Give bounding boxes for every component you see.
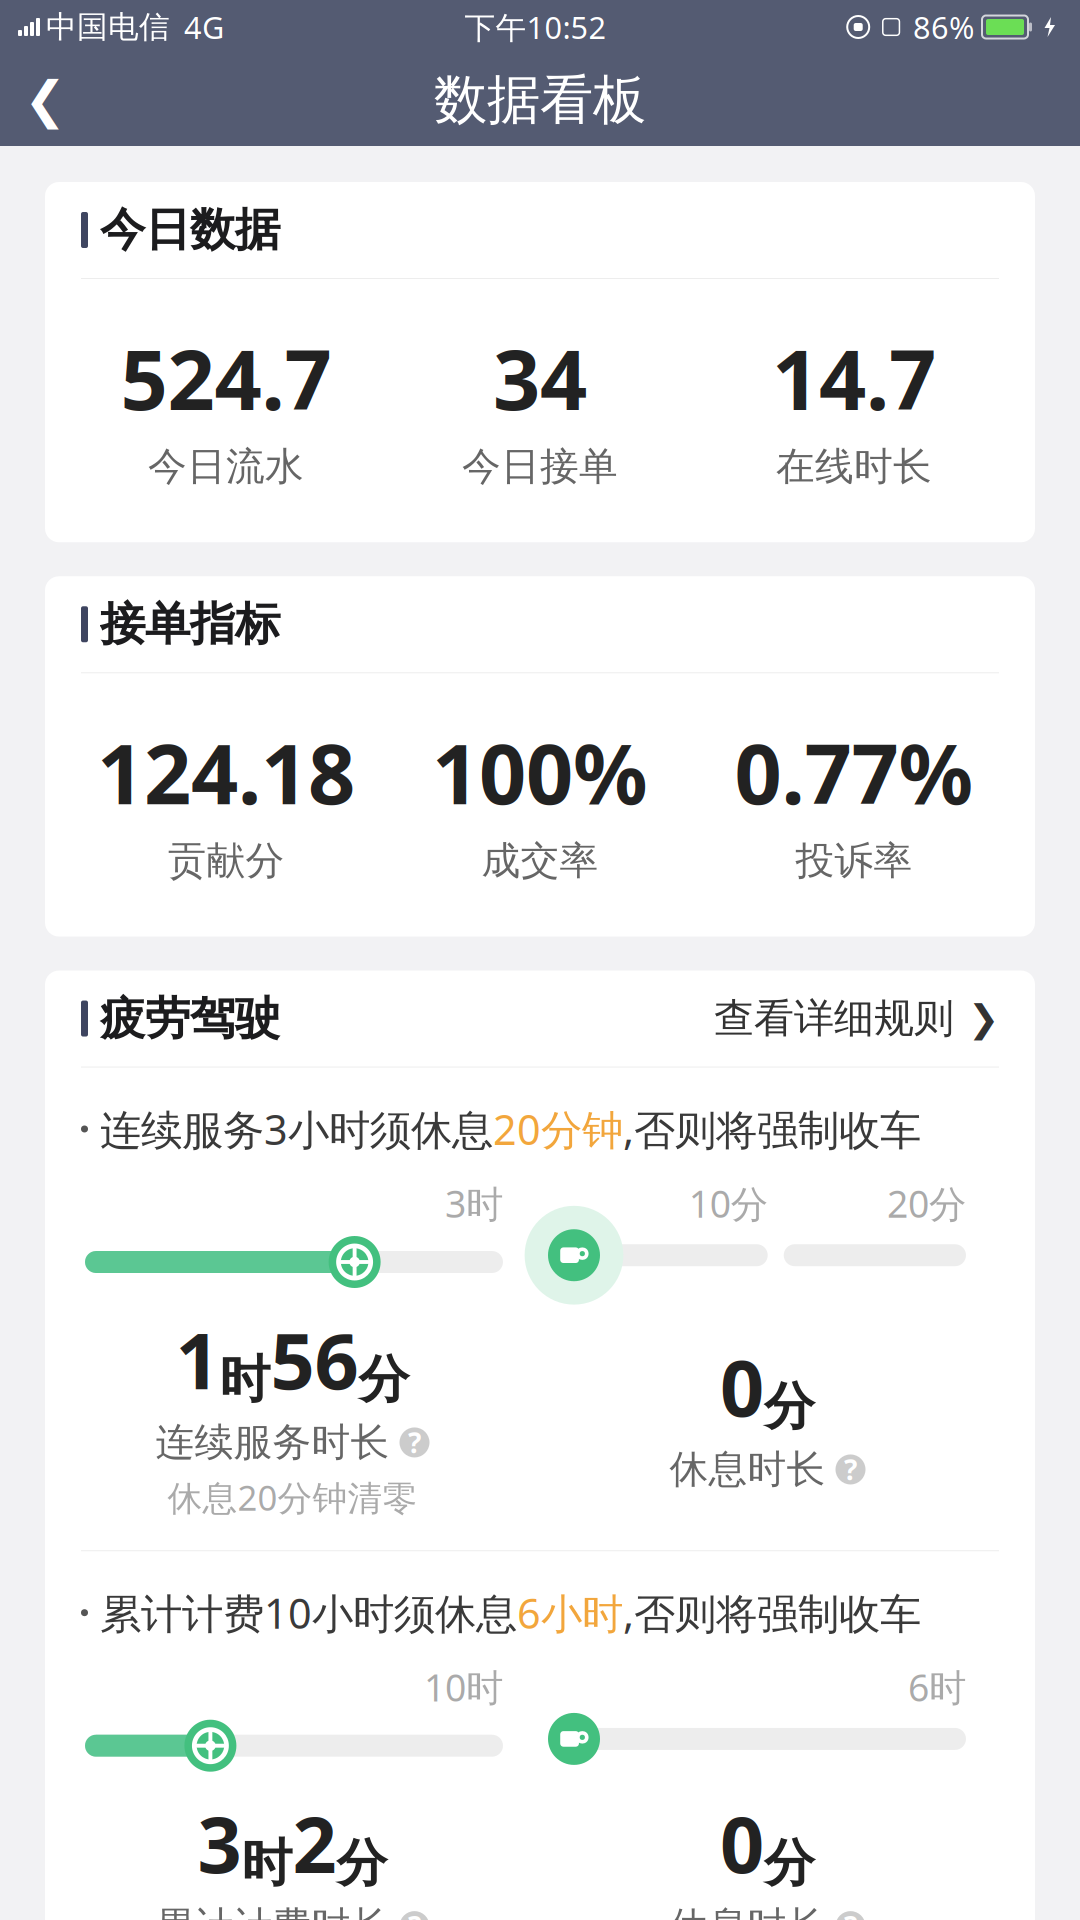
button[interactable]: 说明 (399, 1907, 429, 1920)
staticText: 查看详细规则 (714, 994, 954, 1043)
staticText: 56 (270, 1308, 358, 1411)
staticText: 连续服务时长 (155, 1419, 389, 1466)
staticText: 数据看板 (434, 67, 646, 133)
staticText: 10分 (689, 1178, 768, 1228)
staticText: ❮ (24, 71, 66, 129)
button[interactable]: 查看详细规则 (714, 986, 999, 1051)
staticText: 时 (219, 1348, 270, 1411)
staticText: 成交率 (481, 837, 598, 885)
staticText: 3时 (445, 1178, 503, 1228)
staticText: 86% (913, 7, 974, 47)
staticText: 524.7 (120, 323, 331, 433)
staticText: 1 (175, 1308, 219, 1411)
staticText: ,否则将强制收车 (623, 1585, 921, 1640)
staticText: 疲劳驾驶 (100, 991, 280, 1046)
staticText: 下午10:52 (465, 7, 607, 47)
staticText: 14.7 (772, 323, 936, 433)
staticText: 分 (764, 1375, 815, 1438)
staticText: ❯ (968, 997, 999, 1040)
button[interactable]: 返回 (0, 54, 90, 146)
staticText: ? (408, 1907, 421, 1920)
staticText: 124.18 (97, 717, 355, 827)
staticText: 休息20分钟清零 (167, 1474, 417, 1520)
staticText: 6小时 (517, 1585, 623, 1640)
staticText: 6时 (908, 1662, 966, 1712)
staticText: 分 (764, 1832, 815, 1894)
button[interactable]: 说明 (399, 1424, 429, 1461)
staticText: 分 (358, 1348, 409, 1411)
staticText: 投诉率 (795, 837, 912, 885)
staticText: 20分 (887, 1178, 966, 1228)
staticText: 时 (241, 1832, 292, 1894)
staticText: 0.77% (734, 717, 973, 827)
staticText: ? (844, 1907, 857, 1920)
button[interactable]: 说明 (835, 1907, 865, 1920)
staticText: 连续服务3小时须休息 (100, 1101, 493, 1156)
staticText: 分 (336, 1832, 387, 1894)
button[interactable]: 说明 (835, 1451, 865, 1488)
staticText: 今日流水 (148, 443, 304, 490)
staticText: 累计计费10小时须休息 (100, 1585, 517, 1640)
staticText: 10时 (424, 1662, 503, 1712)
staticText: 3 (197, 1792, 241, 1894)
staticText: 0 (720, 1335, 764, 1438)
staticText: 20分钟 (493, 1101, 623, 1156)
staticText: 2 (292, 1792, 336, 1894)
staticText: 100% (432, 717, 648, 827)
staticText: 接单指标 (100, 596, 280, 652)
staticText: ? (844, 1451, 857, 1488)
staticText: 4G (184, 7, 224, 47)
staticText: 休息时长 (669, 1446, 825, 1493)
staticText: 中国电信 (46, 8, 170, 46)
staticText: 累计计费时长 (155, 1902, 389, 1920)
staticText: 在线时长 (776, 443, 932, 490)
staticText: ? (408, 1424, 421, 1461)
staticText: 休息时长 (669, 1902, 825, 1920)
staticText: ,否则将强制收车 (623, 1101, 921, 1156)
staticText: 今日数据 (100, 202, 280, 258)
staticText: 0 (720, 1792, 764, 1894)
staticText: 贡献分 (167, 837, 284, 885)
staticText: 今日接单 (462, 443, 618, 490)
staticText: 34 (493, 323, 587, 433)
